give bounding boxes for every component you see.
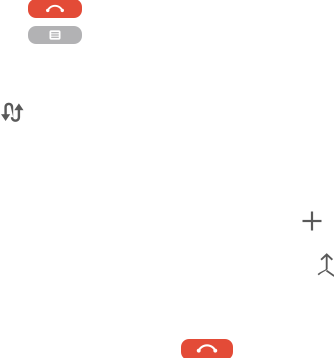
button[interactable]: Merge calls: [317, 252, 334, 277]
button[interactable]: End call: [28, 0, 82, 18]
button[interactable]: End call: [181, 339, 233, 358]
button[interactable]: Keypad: [28, 26, 82, 44]
button[interactable]: Add call: [300, 209, 324, 233]
button[interactable]: Transfer call: [0, 101, 25, 123]
